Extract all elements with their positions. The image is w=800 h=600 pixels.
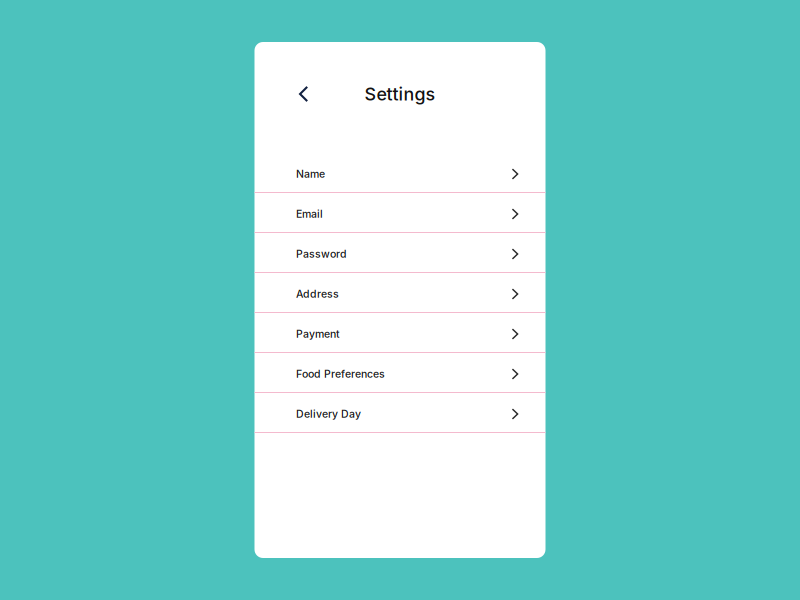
button[interactable]: Back: [254, 78, 322, 110]
button[interactable]: Name: [254, 153, 545, 193]
staticText: Address: [296, 288, 339, 300]
staticText: Password: [296, 248, 347, 260]
staticText: Delivery Day: [296, 408, 361, 420]
button[interactable]: Email: [254, 193, 545, 233]
staticText: Email: [296, 208, 323, 220]
staticText: Name: [296, 168, 325, 180]
button[interactable]: Payment: [254, 313, 545, 353]
button[interactable]: Address: [254, 273, 545, 313]
button[interactable]: Delivery Day: [254, 393, 545, 433]
staticText: Settings: [364, 83, 435, 105]
button[interactable]: Food Preferences: [254, 353, 545, 393]
staticText: Payment: [296, 328, 340, 340]
button[interactable]: Password: [254, 233, 545, 273]
staticText: Food Preferences: [296, 368, 385, 380]
